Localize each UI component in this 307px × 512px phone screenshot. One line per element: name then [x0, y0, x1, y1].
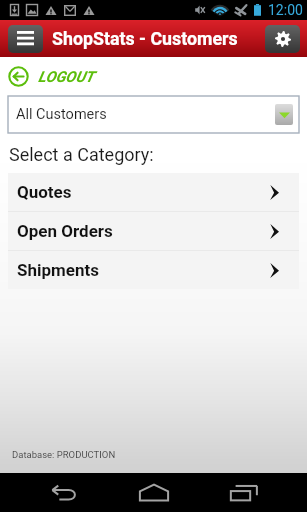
button[interactable]: Shipments — [8, 251, 299, 289]
button[interactable]: Settings — [265, 25, 300, 53]
button[interactable]: Home — [120, 473, 188, 512]
staticText: Database: PRODUCTION — [12, 449, 116, 460]
button[interactable]: Menu — [8, 25, 43, 53]
staticText: Shipments — [17, 260, 99, 280]
staticText: ShopStats - Customers — [52, 28, 238, 49]
staticText: All Customers — [16, 106, 107, 123]
button[interactable]: Recent apps — [210, 473, 278, 512]
staticText: Select a Category: — [9, 144, 154, 165]
staticText: LOGOUT — [38, 68, 95, 86]
staticText: Quotes — [17, 182, 72, 202]
button[interactable]: LOGOUT — [0, 57, 307, 96]
button[interactable]: All Customers — [8, 96, 299, 133]
button[interactable]: Back — [29, 473, 97, 512]
staticText: Open Orders — [17, 221, 113, 241]
button[interactable]: Quotes — [8, 173, 299, 211]
button[interactable]: Open Orders — [8, 212, 299, 250]
staticText: 12:00 — [268, 2, 303, 18]
